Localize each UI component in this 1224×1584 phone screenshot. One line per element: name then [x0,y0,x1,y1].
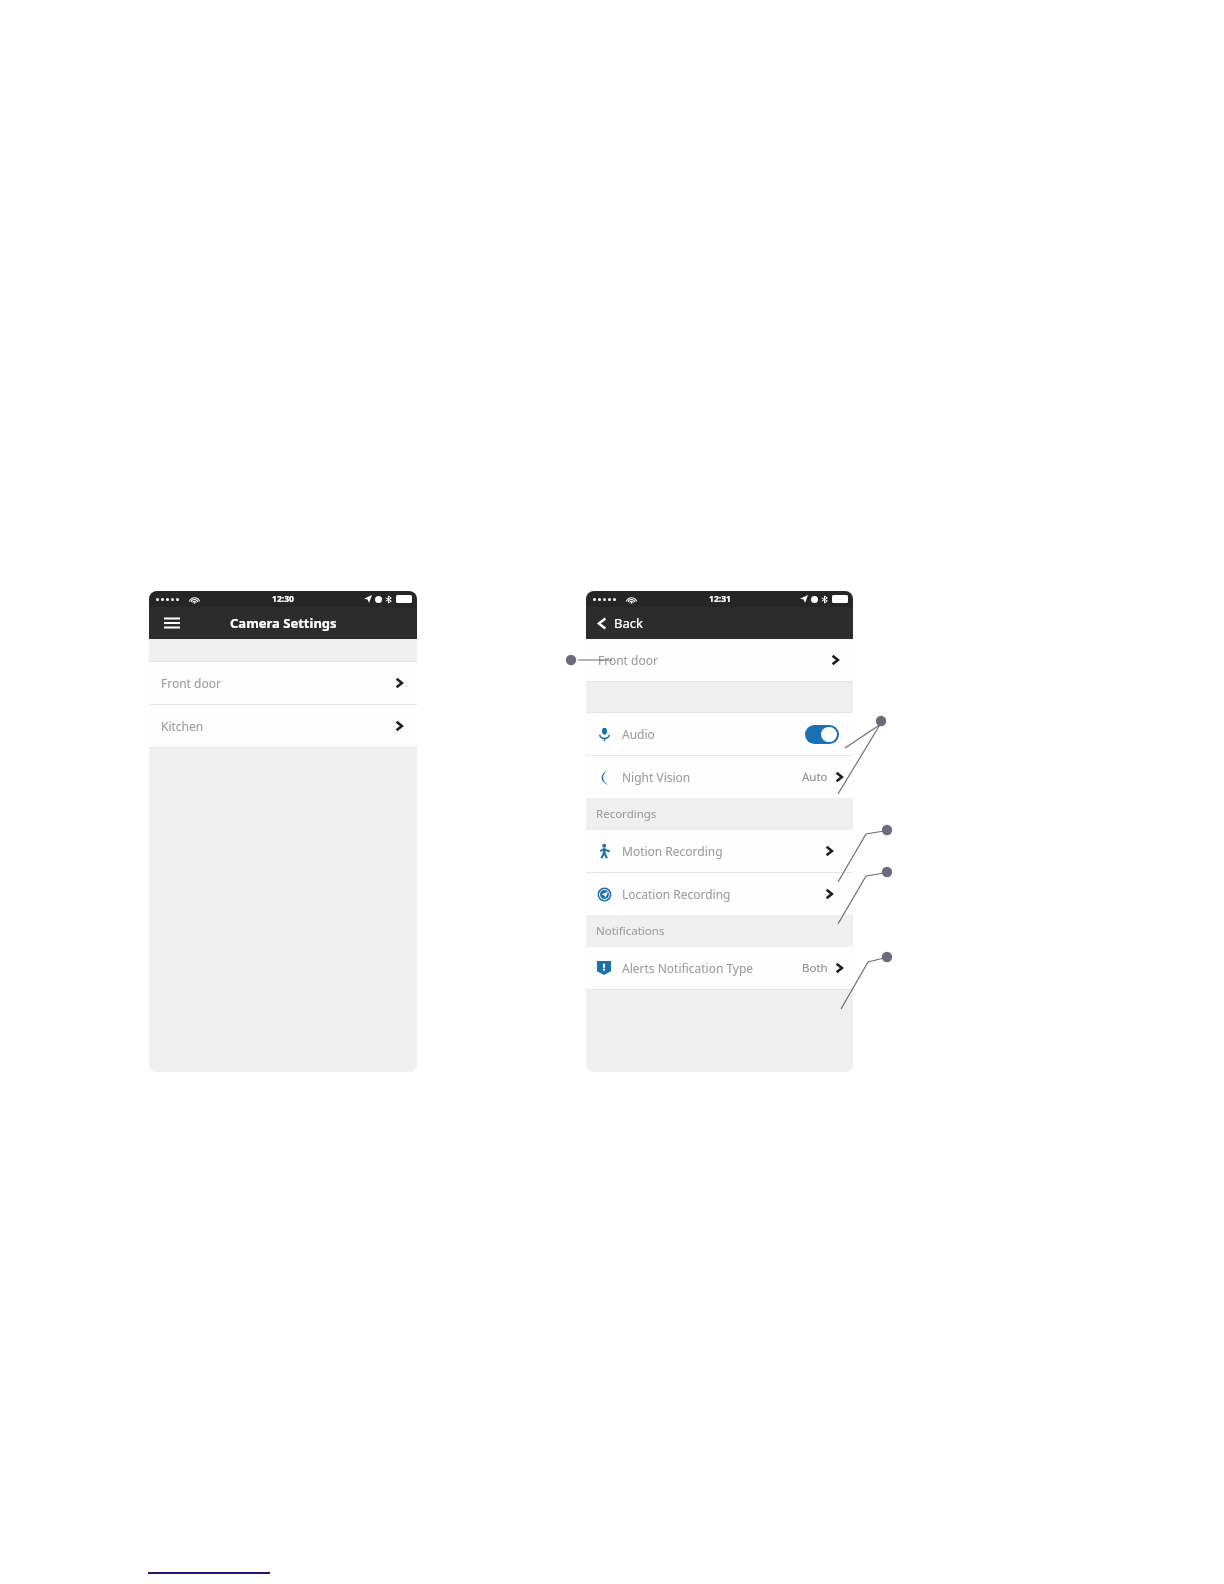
staticText: Back [614,614,643,632]
staticText: Location Recording [622,886,731,902]
button[interactable]: Motion Recording [586,830,853,872]
staticText: 12:30 [272,593,294,605]
staticText: Notifications [596,923,665,939]
staticText: Front door [161,675,221,691]
button[interactable]: Night Vision [586,756,853,798]
button[interactable]: Kitchen [149,705,417,747]
button[interactable]: Menu [161,612,183,634]
staticText: Auto [802,769,828,785]
staticText: Motion Recording [622,843,723,859]
staticText: Night Vision [622,769,691,785]
staticText: Camera Settings [230,614,337,632]
button[interactable]: Back [596,607,643,639]
staticText: 12:31 [709,593,731,605]
staticText: Recordings [596,806,657,822]
staticText: Audio [622,726,655,742]
button[interactable]: Alerts Notification Type [586,947,853,989]
button[interactable]: Front door [149,662,417,704]
button[interactable]: Audio toggle on [805,725,839,744]
staticText: Both [802,960,828,976]
staticText: Kitchen [161,718,204,734]
button[interactable]: Audio [586,713,853,755]
button[interactable]: Front door [586,639,853,681]
staticText: Front door [598,652,658,668]
staticText: Alerts Notification Type [622,960,754,976]
button[interactable]: Location Recording [586,873,853,915]
